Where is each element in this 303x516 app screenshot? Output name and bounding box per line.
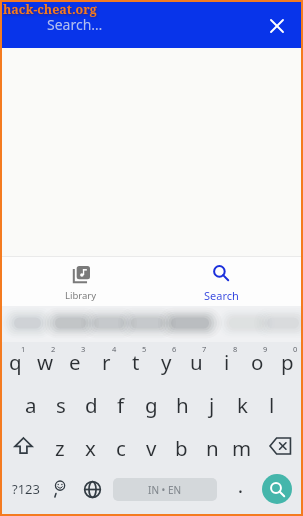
- staticText: f: [117, 391, 125, 419]
- staticText: 1: [21, 344, 26, 354]
- staticText: v: [146, 434, 157, 462]
- staticText: c: [116, 434, 126, 462]
- staticText: Library: [65, 289, 97, 302]
- button[interactable]: b: [166, 426, 196, 466]
- staticText: m: [232, 434, 252, 462]
- staticText: x: [85, 434, 96, 462]
- button[interactable]: g: [136, 384, 166, 424]
- button[interactable]: p: [272, 342, 302, 382]
- staticText: 9: [263, 344, 268, 354]
- button[interactable]: [263, 428, 299, 464]
- button[interactable]: [44, 472, 74, 506]
- staticText: IN • EN: [148, 483, 182, 497]
- staticText: k: [237, 391, 248, 419]
- staticText: a: [25, 391, 37, 419]
- button[interactable]: [259, 8, 295, 44]
- button[interactable]: d: [76, 384, 106, 424]
- button[interactable]: i: [212, 342, 242, 382]
- button[interactable]: o: [242, 342, 272, 382]
- staticText: q: [9, 348, 22, 376]
- staticText: ?123: [12, 480, 40, 498]
- staticText: Search…: [47, 15, 103, 34]
- staticText: hack-cheat.org: [3, 1, 97, 18]
- button[interactable]: .: [228, 472, 252, 506]
- button[interactable]: r: [91, 342, 121, 382]
- button[interactable]: j: [197, 384, 227, 424]
- button[interactable]: c: [106, 426, 136, 466]
- staticText: 4: [112, 344, 117, 354]
- button[interactable]: y: [151, 342, 181, 382]
- staticText: g: [145, 391, 158, 419]
- button[interactable]: [77, 472, 107, 506]
- staticText: p: [281, 348, 294, 376]
- staticText: r: [102, 348, 111, 376]
- button[interactable]: Search: [186, 257, 256, 306]
- staticText: b: [175, 434, 188, 462]
- staticText: z: [55, 434, 65, 462]
- staticText: h: [176, 391, 189, 419]
- staticText: d: [85, 391, 98, 419]
- button[interactable]: x: [75, 426, 105, 466]
- staticText: u: [190, 348, 203, 376]
- staticText: s: [56, 391, 66, 419]
- button[interactable]: [262, 474, 292, 504]
- button[interactable]: v: [136, 426, 166, 466]
- button[interactable]: e: [60, 342, 90, 382]
- button[interactable]: k: [227, 384, 257, 424]
- button[interactable]: a: [16, 384, 46, 424]
- button[interactable]: h: [167, 384, 197, 424]
- staticText: e: [69, 348, 81, 376]
- button[interactable]: Search…: [40, 4, 200, 44]
- staticText: 0: [293, 344, 298, 354]
- staticText: Search: [204, 288, 239, 303]
- staticText: w: [37, 348, 54, 376]
- button[interactable]: f: [106, 384, 136, 424]
- staticText: y: [161, 348, 172, 376]
- staticText: l: [269, 391, 275, 419]
- staticText: 5: [142, 344, 147, 354]
- button[interactable]: z: [45, 426, 75, 466]
- button[interactable]: u: [181, 342, 211, 382]
- button[interactable]: w: [30, 342, 60, 382]
- staticText: i: [224, 348, 230, 376]
- button[interactable]: q: [0, 342, 30, 382]
- button[interactable]: l: [257, 384, 287, 424]
- button[interactable]: Library: [46, 257, 116, 306]
- button[interactable]: m: [227, 426, 257, 466]
- staticText: 2: [51, 344, 56, 354]
- staticText: n: [206, 434, 219, 462]
- button[interactable]: ?123: [8, 472, 44, 506]
- staticText: 6: [172, 344, 177, 354]
- staticText: 8: [233, 344, 238, 354]
- staticText: t: [132, 348, 140, 376]
- staticText: 7: [202, 344, 207, 354]
- staticText: j: [209, 391, 215, 419]
- button[interactable]: s: [46, 384, 76, 424]
- button[interactable]: IN • EN: [113, 478, 217, 501]
- button[interactable]: [6, 428, 40, 464]
- staticText: o: [251, 348, 264, 376]
- staticText: .: [238, 474, 243, 499]
- button[interactable]: n: [197, 426, 227, 466]
- button[interactable]: t: [121, 342, 151, 382]
- staticText: 3: [81, 344, 86, 354]
